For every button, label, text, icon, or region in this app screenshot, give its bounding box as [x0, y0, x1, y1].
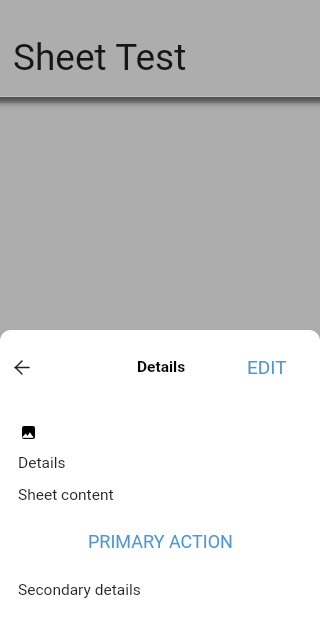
- button[interactable]: Back: [2, 347, 42, 387]
- staticText: EDIT: [247, 356, 287, 378]
- staticText: Details: [137, 358, 186, 376]
- staticText: Secondary details: [18, 581, 141, 599]
- button[interactable]: PRIMARY ACTION: [76, 525, 245, 558]
- staticText: Sheet Test: [13, 36, 187, 79]
- staticText: PRIMARY ACTION: [88, 531, 233, 552]
- staticText: Sheet content: [18, 486, 114, 504]
- staticText: Details: [18, 454, 66, 472]
- button[interactable]: EDIT: [236, 351, 298, 383]
